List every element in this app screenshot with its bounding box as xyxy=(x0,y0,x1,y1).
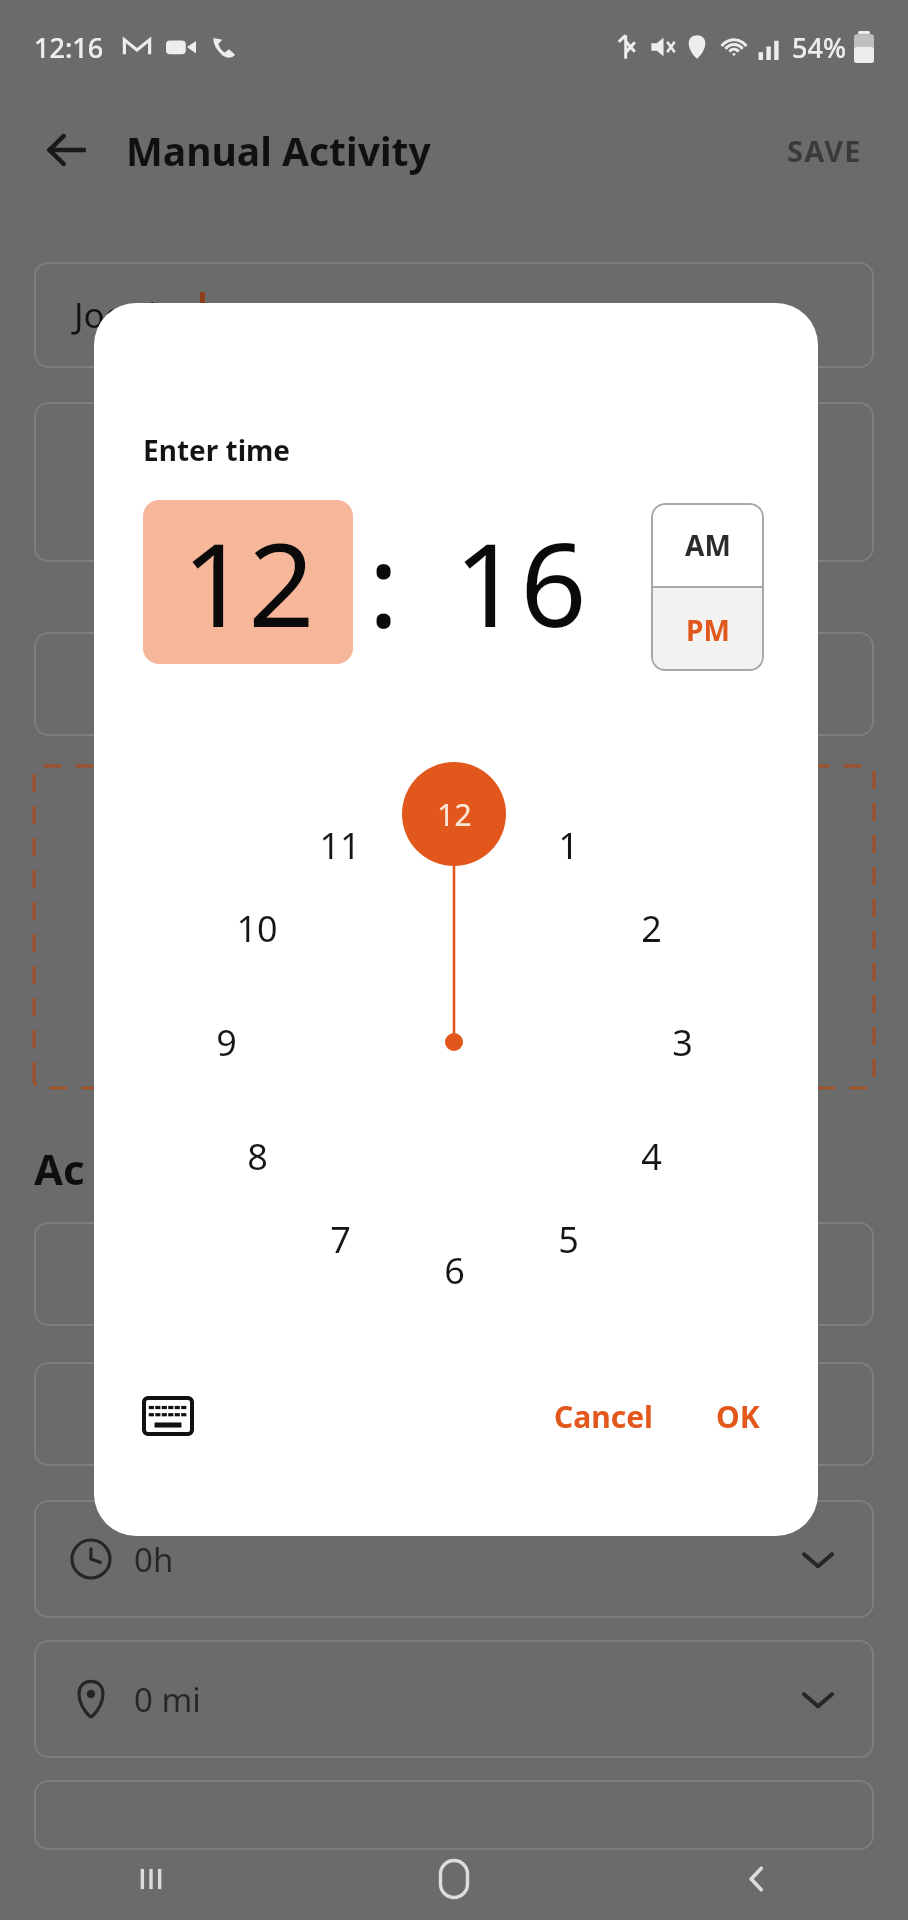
button[interactable]: 8 xyxy=(217,1122,297,1190)
staticText: Manual Activity xyxy=(126,124,431,177)
button[interactable]: Switch to text input xyxy=(134,1382,202,1450)
staticText: 3 xyxy=(672,1018,693,1067)
button[interactable]: 2 xyxy=(611,894,691,962)
staticText: 7 xyxy=(330,1215,351,1264)
staticText: 6 xyxy=(444,1246,465,1295)
staticText: 2 xyxy=(641,904,662,953)
staticText: 16 xyxy=(454,503,587,661)
button[interactable]: 16 xyxy=(415,500,625,664)
staticText: 12 xyxy=(353,500,415,664)
staticText: 11 xyxy=(319,821,361,870)
button[interactable]: 3 xyxy=(642,1008,722,1076)
button[interactable]: 5 xyxy=(528,1205,608,1273)
button[interactable]: AM xyxy=(651,503,764,586)
staticText: SAVE xyxy=(787,131,862,170)
button[interactable]: 6 xyxy=(414,1236,494,1304)
button[interactable]: Back xyxy=(34,117,100,183)
button[interactable]: Jogging xyxy=(34,262,874,368)
staticText: 12 xyxy=(437,794,472,835)
staticText: 0 mi xyxy=(134,1677,201,1722)
button[interactable]: 12 xyxy=(414,780,494,848)
staticText: AM xyxy=(685,526,731,564)
button[interactable]: 9 xyxy=(186,1008,266,1076)
button[interactable]: Recents xyxy=(0,1838,302,1920)
button[interactable]: 7 xyxy=(300,1205,380,1273)
button[interactable]: Back xyxy=(605,1838,908,1920)
staticText: 10 xyxy=(236,904,278,953)
staticText: Jogging xyxy=(74,291,200,339)
staticText: 4 xyxy=(641,1132,662,1181)
staticText: 5 xyxy=(558,1215,579,1264)
button[interactable]: 11 xyxy=(300,811,380,879)
button[interactable]: SAVE xyxy=(779,123,870,178)
button[interactable]: 0 mi xyxy=(34,1640,874,1758)
button[interactable]: 12 xyxy=(143,500,353,664)
staticText: PM xyxy=(686,611,730,649)
staticText: : xyxy=(368,503,400,661)
button[interactable]: 10 xyxy=(217,894,297,962)
staticText: 12 xyxy=(182,503,315,661)
staticText: Enter time xyxy=(143,431,291,469)
button[interactable]: PM xyxy=(651,588,764,671)
staticText: 9 xyxy=(216,1018,237,1067)
staticText: 0h xyxy=(134,1537,174,1582)
button[interactable]: 0h xyxy=(34,1500,874,1618)
button[interactable]: 4 xyxy=(611,1122,691,1190)
staticText: 54% xyxy=(792,29,846,66)
staticText: 12:16 xyxy=(34,29,104,66)
button[interactable]: Cancel xyxy=(540,1386,668,1447)
staticText: Cancel xyxy=(554,1396,654,1437)
button[interactable]: OK xyxy=(702,1386,774,1447)
button[interactable]: Home xyxy=(302,1838,605,1920)
staticText: 8 xyxy=(247,1132,268,1181)
staticText: Ac xyxy=(34,1140,85,1197)
staticText: OK xyxy=(716,1396,760,1437)
button[interactable]: 1 xyxy=(528,811,608,879)
staticText: 1 xyxy=(558,821,579,870)
